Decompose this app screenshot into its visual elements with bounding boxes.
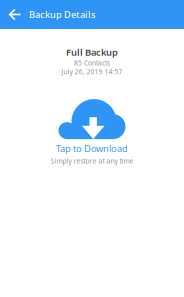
staticText: Backup Details — [29, 8, 96, 21]
button[interactable]: Back — [2, 0, 29, 29]
staticText: 85 Contacts — [74, 58, 110, 67]
staticText: Tap to Download — [56, 142, 128, 154]
button[interactable]: Tap to Download — [56, 99, 128, 154]
staticText: Simply restore at any time — [50, 156, 133, 165]
staticText: Full Backup — [66, 46, 118, 58]
staticText: July 26, 2019 14:57 — [61, 67, 122, 76]
